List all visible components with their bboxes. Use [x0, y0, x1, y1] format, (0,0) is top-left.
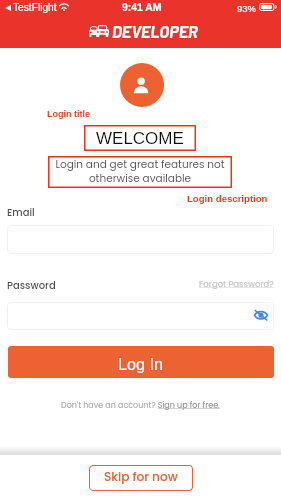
staticText: Password: [7, 278, 56, 292]
staticText: Skip for now: [104, 468, 178, 485]
staticText: 9:41 AM: [122, 2, 162, 14]
staticText: Log In: [118, 355, 164, 373]
staticText: Email: [7, 205, 35, 219]
button[interactable]: Forgot Password?: [199, 278, 274, 290]
button[interactable]: Email input: [7, 225, 274, 254]
button[interactable]: Password input: [7, 302, 274, 330]
staticText: WELCOME: [96, 129, 184, 148]
button[interactable]: User avatar: [120, 63, 164, 107]
staticText: 93%: [237, 3, 257, 14]
staticText: TestFlight: [13, 2, 57, 13]
staticText: Login and get great features not otherwi…: [52, 157, 228, 186]
button[interactable]: Log In: [8, 346, 274, 378]
button[interactable]: Skip for now: [89, 465, 193, 491]
button[interactable]: Show password: [254, 309, 268, 321]
staticText: DEVELOPER: [112, 22, 198, 42]
staticText: Login description: [187, 193, 268, 204]
staticText: Forgot Password?: [199, 278, 274, 290]
staticText: Login title: [47, 109, 90, 119]
button[interactable]: Don't have an account? Sign up for free.: [61, 400, 220, 411]
staticText: Don't have an account? Sign up for free.: [61, 400, 220, 411]
